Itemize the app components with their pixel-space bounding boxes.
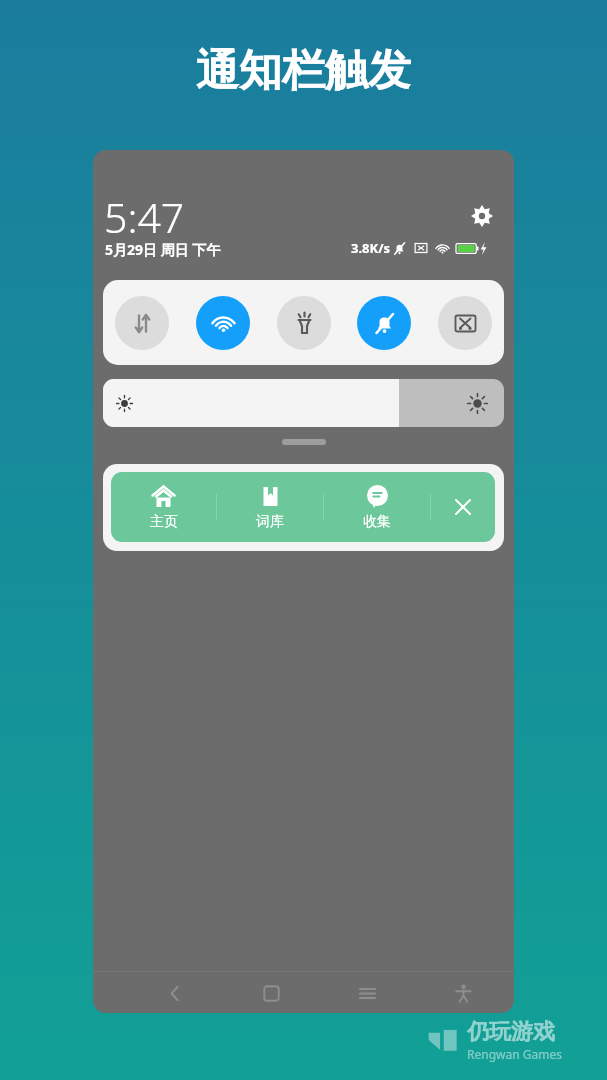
button[interactable]: 收集 [324, 472, 430, 542]
button[interactable]: Accessibility [443, 973, 483, 1013]
button[interactable]: Silent mode [357, 296, 411, 350]
staticText: 主页 [150, 513, 178, 531]
button[interactable]: 主页 [111, 472, 216, 542]
button[interactable]: Mobile data [115, 296, 169, 350]
button[interactable]: Screenshot [438, 296, 492, 350]
button[interactable]: Settings [466, 200, 498, 232]
button[interactable]: Brightness [103, 379, 504, 427]
button[interactable]: Back [155, 973, 195, 1013]
staticText: Rengwan Games [467, 1046, 562, 1062]
staticText: 通知栏触发 [0, 44, 607, 98]
button[interactable]: 词库 [217, 472, 323, 542]
button[interactable]: Home [251, 973, 291, 1013]
staticText: 5月29日 周日 下午 [105, 240, 221, 259]
staticText: 仍玩游戏 [467, 1018, 555, 1046]
staticText: 收集 [363, 513, 391, 531]
staticText: 词库 [256, 513, 284, 531]
staticText: 3.8K/s [351, 239, 391, 257]
button[interactable]: Recents [347, 973, 387, 1013]
button[interactable]: Close [431, 472, 495, 542]
button[interactable]: Wi-Fi [196, 296, 250, 350]
staticText: 5:47 [104, 189, 185, 245]
button[interactable]: Flashlight [277, 296, 331, 350]
